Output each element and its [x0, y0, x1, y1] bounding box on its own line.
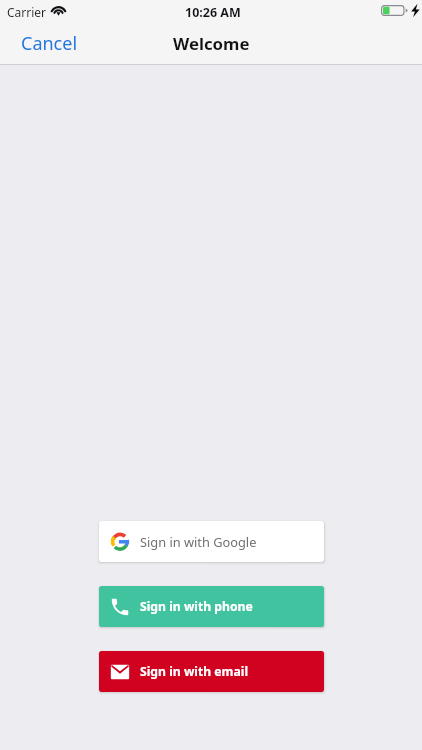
staticText: Carrier — [7, 4, 47, 20]
other: Battery charging — [381, 5, 421, 16]
staticText: 10:26 AM — [185, 4, 241, 21]
button[interactable]: Sign in with phone — [99, 586, 324, 627]
staticText: Cancel — [21, 31, 78, 56]
other: Wi-Fi signal — [50, 4, 67, 15]
staticText: Sign in with Google — [140, 533, 257, 550]
staticText: Welcome — [173, 32, 250, 55]
button[interactable]: Cancel — [0, 23, 99, 64]
staticText: Sign in with phone — [140, 598, 253, 615]
staticText: Sign in with email — [140, 663, 249, 680]
button[interactable]: Sign in with email — [99, 651, 324, 692]
button[interactable]: Sign in with Google — [99, 521, 324, 562]
